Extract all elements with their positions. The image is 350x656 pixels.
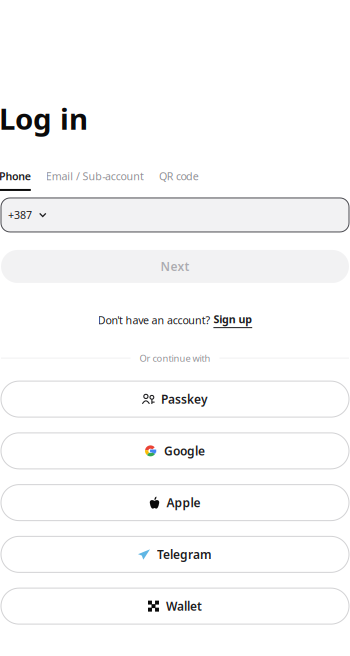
staticText: Next (160, 258, 189, 274)
button[interactable]: Phone (0, 169, 31, 191)
staticText: Telegram (157, 546, 212, 562)
button[interactable]: Next (1, 250, 349, 283)
staticText: Sign up (213, 312, 252, 326)
staticText: Or continue with (139, 352, 210, 364)
button[interactable]: +387 (1, 198, 349, 232)
staticText: +387 (8, 208, 32, 222)
staticText: Don't have an account? (98, 313, 213, 327)
button[interactable]: Google (1, 433, 349, 469)
staticText: Google (164, 443, 205, 459)
staticText: Wallet (166, 598, 202, 614)
staticText: Apple (166, 495, 200, 511)
button[interactable]: Apple (1, 485, 349, 521)
button[interactable]: Sign up (213, 312, 252, 328)
button[interactable]: Wallet (1, 588, 349, 624)
button[interactable]: QR code (159, 169, 199, 183)
staticText: Passkey (161, 391, 208, 407)
button[interactable]: Telegram (1, 536, 349, 572)
staticText: Phone (0, 169, 31, 183)
staticText: Email / Sub-account (46, 169, 144, 183)
button[interactable]: Passkey (1, 381, 349, 417)
staticText: Log in (0, 99, 88, 138)
staticText: QR code (159, 169, 199, 183)
button[interactable]: Email / Sub-account (46, 169, 144, 183)
